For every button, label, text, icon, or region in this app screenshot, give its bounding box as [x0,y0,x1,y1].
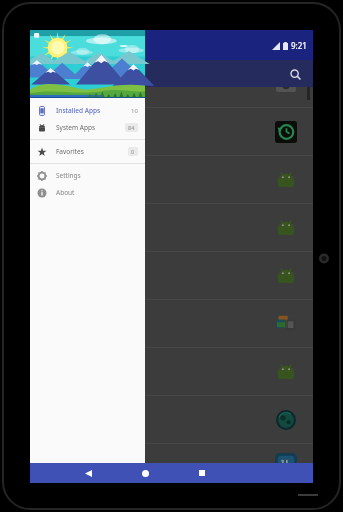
button[interactable]: Back [79,464,97,482]
button[interactable]: Installed Apps [30,102,145,119]
button[interactable] [30,30,313,483]
staticText: 10 [131,107,138,115]
button[interactable] [30,156,313,203]
button[interactable] [30,348,313,395]
button[interactable]: System Apps [30,119,145,136]
button[interactable]: Settings [30,167,145,184]
button[interactable] [30,300,313,347]
staticText: 0 [131,148,135,155]
button[interactable] [30,252,313,299]
button[interactable] [30,108,313,155]
button[interactable]: Recents [193,464,211,482]
staticText: 9:21 [291,40,307,51]
button[interactable] [30,444,313,483]
staticText: Settings [56,171,81,180]
staticText: Installed Apps [56,106,101,115]
staticText: Favorites [56,147,84,156]
button[interactable]: About [30,184,145,201]
staticText: About [56,188,75,197]
button[interactable]: Favorites [30,143,145,160]
staticText: System Apps [56,123,96,132]
button[interactable]: Search [285,64,305,84]
button[interactable] [30,204,313,251]
staticText: 84 [128,124,135,131]
button[interactable] [30,396,313,443]
button[interactable] [30,60,313,107]
button[interactable]: Home [136,464,154,482]
